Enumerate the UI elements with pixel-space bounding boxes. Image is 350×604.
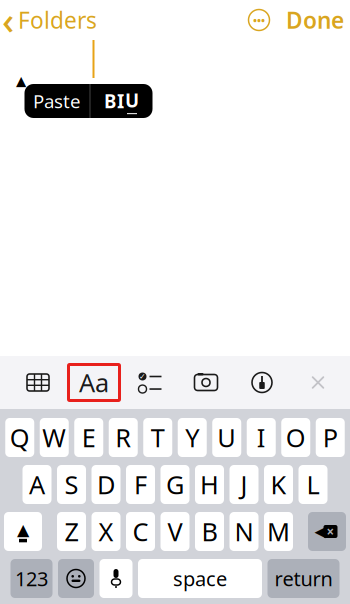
button[interactable]: space bbox=[138, 559, 262, 598]
staticText: L bbox=[306, 468, 319, 501]
staticText: F bbox=[134, 468, 147, 501]
staticText: T bbox=[151, 421, 165, 454]
staticText: Z bbox=[64, 515, 78, 548]
staticText: return bbox=[274, 565, 332, 592]
button[interactable]: U bbox=[212, 418, 241, 457]
button[interactable]: W bbox=[40, 418, 69, 457]
staticText: S bbox=[64, 468, 78, 501]
button[interactable]: Markup bbox=[238, 364, 286, 400]
staticText: I bbox=[117, 89, 124, 113]
button[interactable]: Emoji bbox=[58, 559, 94, 598]
staticText: ▲ bbox=[17, 521, 29, 539]
staticText: O bbox=[286, 421, 306, 454]
button[interactable]: Y bbox=[178, 418, 207, 457]
button[interactable]: F bbox=[126, 465, 155, 504]
button[interactable]: T bbox=[143, 418, 172, 457]
button[interactable]: X bbox=[91, 512, 120, 551]
staticText: Folders bbox=[18, 5, 97, 35]
staticText: R bbox=[115, 421, 131, 454]
staticText: B bbox=[104, 89, 116, 113]
staticText: M bbox=[267, 515, 290, 548]
staticText: ✓ bbox=[139, 372, 146, 381]
staticText: A bbox=[29, 468, 45, 501]
staticText: ‹ bbox=[2, 0, 14, 45]
button[interactable]: M bbox=[264, 512, 293, 551]
button[interactable]: P bbox=[316, 418, 345, 457]
staticText: U bbox=[125, 88, 139, 113]
staticText: Paste bbox=[33, 89, 81, 113]
button[interactable]: R bbox=[109, 418, 138, 457]
button[interactable]: Dictation bbox=[99, 559, 132, 598]
staticText: B bbox=[201, 515, 217, 548]
staticText: space bbox=[173, 565, 227, 592]
button[interactable]: Camera bbox=[182, 364, 230, 400]
button[interactable]: Hide keyboard bbox=[294, 364, 342, 400]
staticText: U bbox=[217, 421, 236, 454]
button[interactable]: I bbox=[247, 418, 276, 457]
button[interactable]: Delete bbox=[308, 512, 346, 551]
button[interactable]: Z bbox=[57, 512, 86, 551]
staticText: ••• bbox=[253, 13, 265, 27]
button[interactable]: H bbox=[195, 465, 224, 504]
button[interactable]: K bbox=[264, 465, 293, 504]
button[interactable]: Table bbox=[14, 364, 62, 400]
staticText: J bbox=[240, 468, 247, 501]
button[interactable]: Format bbox=[90, 84, 152, 118]
staticText: V bbox=[167, 515, 182, 548]
staticText: Q bbox=[10, 421, 30, 454]
button[interactable]: Paste bbox=[24, 84, 89, 118]
button[interactable]: O bbox=[281, 418, 310, 457]
staticText: × bbox=[326, 523, 334, 540]
button[interactable]: N bbox=[229, 512, 258, 551]
staticText: P bbox=[323, 421, 338, 454]
staticText: G bbox=[166, 468, 184, 501]
button[interactable]: 123 bbox=[10, 559, 52, 598]
button[interactable]: L bbox=[298, 465, 327, 504]
button[interactable]: V bbox=[160, 512, 189, 551]
staticText: X bbox=[98, 515, 113, 548]
staticText: Aa bbox=[79, 366, 109, 399]
button[interactable]: D bbox=[91, 465, 120, 504]
staticText: K bbox=[270, 468, 286, 501]
staticText: ▲ bbox=[16, 73, 26, 88]
staticText: I bbox=[257, 421, 266, 454]
button[interactable]: E bbox=[74, 418, 103, 457]
button[interactable]: A bbox=[22, 465, 51, 504]
button[interactable]: S bbox=[57, 465, 86, 504]
staticText: ◀ bbox=[314, 523, 325, 540]
staticText: Done bbox=[286, 5, 344, 35]
button[interactable]: J bbox=[229, 465, 258, 504]
button[interactable]: G bbox=[160, 465, 189, 504]
staticText: C bbox=[132, 515, 148, 548]
button[interactable]: Done bbox=[276, 0, 350, 40]
staticText: 123 bbox=[15, 565, 48, 592]
staticText: H bbox=[200, 468, 219, 501]
staticText: E bbox=[82, 421, 96, 454]
staticText: Y bbox=[185, 421, 199, 454]
button[interactable]: More bbox=[242, 0, 276, 40]
staticText: N bbox=[234, 515, 253, 548]
button[interactable]: Checklist bbox=[126, 364, 174, 400]
button[interactable]: ‹ bbox=[0, 0, 97, 40]
button[interactable]: Text formatting bbox=[70, 364, 118, 400]
button[interactable]: return bbox=[267, 559, 339, 598]
button[interactable]: B bbox=[195, 512, 224, 551]
button[interactable]: C bbox=[126, 512, 155, 551]
button[interactable]: Q bbox=[5, 418, 34, 457]
staticText: W bbox=[42, 421, 66, 454]
staticText: D bbox=[97, 468, 115, 501]
button[interactable]: Shift bbox=[4, 512, 42, 551]
